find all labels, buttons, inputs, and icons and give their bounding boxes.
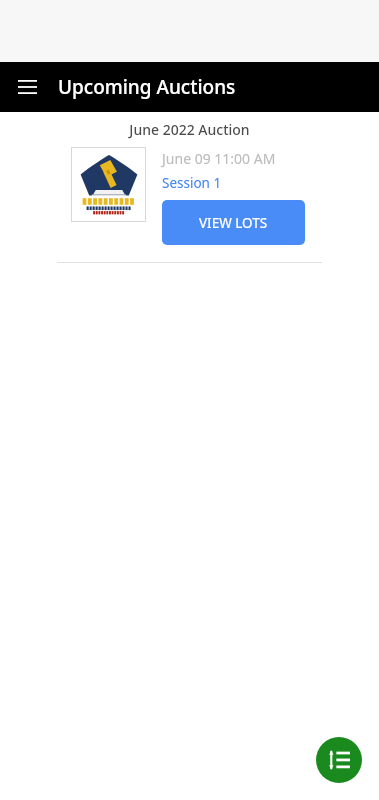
button[interactable]: VIEW LOTS [162,200,305,245]
staticText: June 09 11:00 AM [162,149,276,168]
staticText: Upcoming Auctions [58,74,236,100]
button[interactable]: Bid Y'all auction logo [71,147,146,222]
staticText: June 2022 Auction [0,120,379,139]
staticText: VIEW LOTS [199,214,268,232]
button[interactable]: Open navigation menu [10,70,44,104]
button[interactable]: Session 1 [162,174,222,192]
button[interactable]: Sort auctions [316,737,362,783]
